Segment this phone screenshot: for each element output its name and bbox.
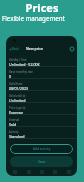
staticText: Unlimited · 52.00€	[9, 62, 40, 67]
staticText: New price	[26, 46, 44, 51]
button[interactable]: Valid from	[6, 79, 77, 91]
staticText: Flexible management	[2, 14, 84, 22]
button[interactable]: Tab 5	[64, 167, 73, 176]
button[interactable]: Valid until	[6, 91, 77, 103]
staticText: Price type	[9, 106, 22, 110]
staticText: Base monthly rate	[9, 70, 33, 74]
button[interactable]: Activity	[6, 127, 77, 139]
button[interactable]: Validity / Unit	[6, 55, 77, 67]
button[interactable]: Save	[10, 156, 73, 167]
button[interactable]: Interval	[6, 115, 77, 127]
staticText: Sold	[9, 122, 17, 127]
staticText: Unlimited	[9, 98, 26, 103]
button[interactable]: Tab 2	[24, 167, 33, 176]
staticText: Back	[12, 47, 20, 51]
staticText: Activity	[9, 130, 19, 134]
button[interactable]: Add activity	[10, 144, 73, 154]
button[interactable]: Base monthly rate	[6, 67, 77, 79]
staticText: Validity / Unit	[9, 58, 27, 62]
staticText: Expense	[9, 110, 24, 115]
staticText: Save	[38, 159, 46, 164]
button[interactable]: Tab 4	[50, 167, 59, 176]
button[interactable]: Back	[9, 47, 20, 51]
button[interactable]: Tab 1	[10, 167, 19, 176]
staticText: Valid until	[9, 94, 22, 98]
button[interactable]: Price type	[6, 103, 77, 115]
staticText: 0	[9, 74, 12, 79]
button[interactable]: Tab 3	[37, 167, 46, 176]
staticText: Add activity	[33, 147, 51, 151]
staticText: 08/01/2023	[9, 86, 29, 91]
staticText: Prices	[0, 0, 84, 15]
staticText: Valid from	[9, 82, 23, 86]
button[interactable]: Save price	[70, 47, 74, 51]
staticText: Interval	[9, 118, 20, 122]
staticText: Standard	[9, 134, 25, 139]
